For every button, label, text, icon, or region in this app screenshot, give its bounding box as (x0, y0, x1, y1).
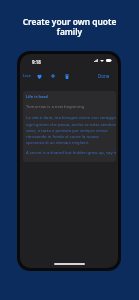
button[interactable]: Live (22, 71, 32, 81)
staticText: Create your own quote family (0, 16, 139, 38)
staticText: Life is hard (26, 94, 48, 100)
staticText: Done (98, 73, 110, 79)
button[interactable]: Delete (63, 72, 71, 80)
button[interactable]: Done (97, 71, 111, 81)
staticText: La vita e dura, ma bisogna vivere con co… (26, 115, 116, 145)
staticText: A secret is a shared but hidden grow up,… (26, 150, 116, 156)
staticText: 9:18 (32, 59, 41, 65)
staticText: Tomorrow is a new beginning (26, 104, 85, 110)
button[interactable]: Life is hard (23, 91, 116, 162)
button[interactable]: Favorite (35, 72, 43, 80)
button[interactable]: Add (49, 72, 57, 80)
staticText: Live (23, 73, 31, 79)
